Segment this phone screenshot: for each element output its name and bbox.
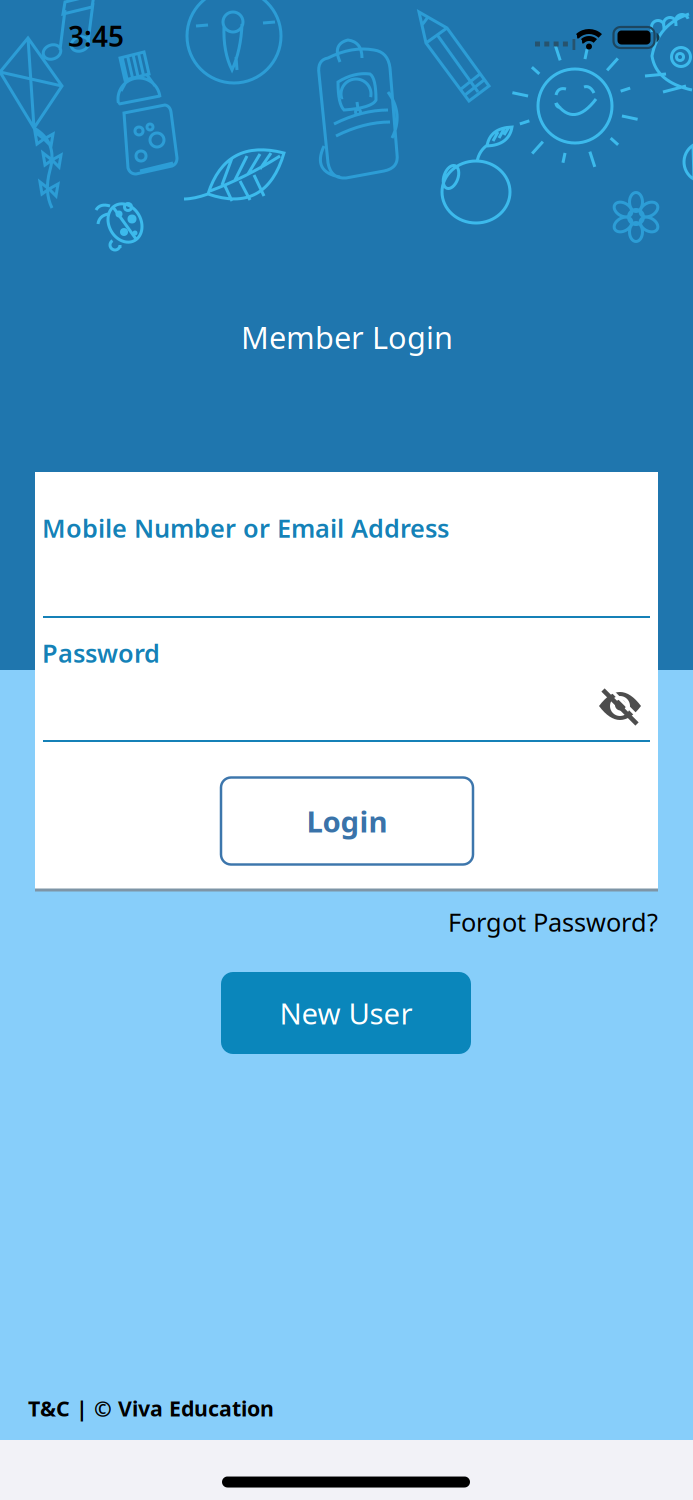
button[interactable]: T&C | © Viva Education [28, 1394, 274, 1422]
button[interactable]: Forgot Password? [448, 905, 658, 939]
staticText: Login [306, 801, 387, 840]
staticText: Mobile Number or Email Address [42, 511, 449, 545]
staticText: 3:45 [68, 17, 124, 55]
staticText: Forgot Password? [448, 905, 658, 939]
staticText: T&C | © Viva Education [28, 1394, 274, 1422]
button[interactable] [597, 683, 643, 729]
staticText: Member Login [241, 317, 453, 357]
button[interactable]: Login [221, 777, 473, 864]
button[interactable]: New User [221, 972, 471, 1054]
staticText: Password [42, 636, 160, 670]
staticText: New User [279, 993, 412, 1032]
